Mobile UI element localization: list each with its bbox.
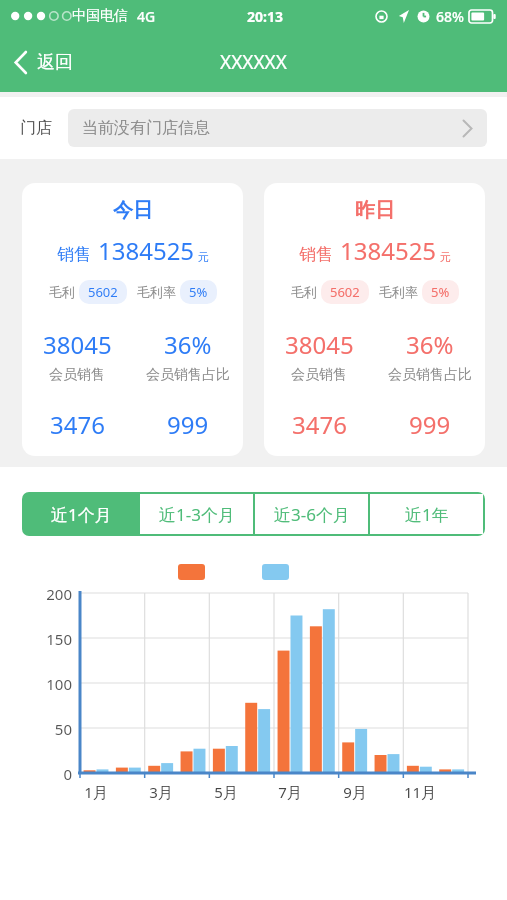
staticText: 999	[409, 408, 451, 441]
staticText: 会员销售占比	[388, 366, 472, 384]
staticText: 3476	[292, 408, 347, 441]
staticText: 1384525	[98, 234, 195, 267]
button[interactable]: 今日	[22, 183, 243, 456]
staticText: 元	[198, 250, 209, 264]
staticText: 3476	[50, 408, 105, 441]
staticText: 36%	[164, 328, 212, 361]
staticText: 1月	[74, 782, 118, 802]
staticText: 门店	[20, 118, 52, 138]
staticText: 元	[440, 250, 451, 264]
staticText: 中国电信	[72, 7, 128, 25]
staticText: 4G	[137, 7, 156, 26]
staticText: 昨日	[355, 198, 395, 223]
staticText: 近3-6个月	[274, 503, 350, 526]
staticText: 0	[26, 764, 72, 784]
staticText: 200	[26, 584, 72, 604]
staticText: 38045	[285, 328, 354, 361]
staticText: 近1-3个月	[159, 503, 235, 526]
button[interactable]: 近3-6个月	[255, 494, 368, 534]
staticText: 5602	[88, 283, 118, 301]
button[interactable]: 近1-3个月	[140, 494, 253, 534]
staticText: 38045	[43, 328, 112, 361]
staticText: 999	[167, 408, 209, 441]
staticText: 5%	[431, 283, 450, 301]
staticText: 近1年	[405, 503, 449, 526]
staticText: 当前没有门店信息	[82, 118, 462, 138]
staticText: 会员销售占比	[146, 366, 230, 384]
staticText: 会员销售	[291, 366, 347, 384]
button[interactable]: 昨日	[264, 183, 485, 456]
staticText: 50	[26, 719, 72, 739]
staticText: 销售	[299, 244, 333, 265]
staticText: 毛利	[291, 284, 317, 300]
staticText: XXXXXX	[220, 49, 287, 75]
staticText: 今日	[113, 198, 153, 223]
staticText: 5602	[330, 283, 360, 301]
staticText: 7月	[268, 782, 312, 802]
staticText: 5月	[204, 782, 248, 802]
staticText: 销售	[57, 244, 91, 265]
staticText: 100	[26, 674, 72, 694]
button[interactable]: 当前没有门店信息	[68, 109, 487, 147]
staticText: 毛利率	[379, 284, 418, 300]
staticText: 毛利	[49, 284, 75, 300]
staticText: 20:13	[247, 7, 283, 26]
staticText: 返回	[37, 51, 73, 74]
staticText: 36%	[406, 328, 454, 361]
button[interactable]: 返回	[0, 40, 89, 85]
staticText: 3月	[139, 782, 183, 802]
staticText: 1384525	[340, 234, 437, 267]
button[interactable]: 近1个月	[24, 494, 138, 534]
button[interactable]: 近1年	[370, 494, 483, 534]
staticText: 150	[26, 629, 72, 649]
staticText: 68%	[436, 7, 464, 26]
staticText: 会员销售	[49, 366, 105, 384]
staticText: 5%	[189, 283, 208, 301]
staticText: 9月	[333, 782, 377, 802]
staticText: 近1个月	[51, 503, 112, 526]
staticText: 毛利率	[137, 284, 176, 300]
staticText: 11月	[398, 782, 442, 802]
